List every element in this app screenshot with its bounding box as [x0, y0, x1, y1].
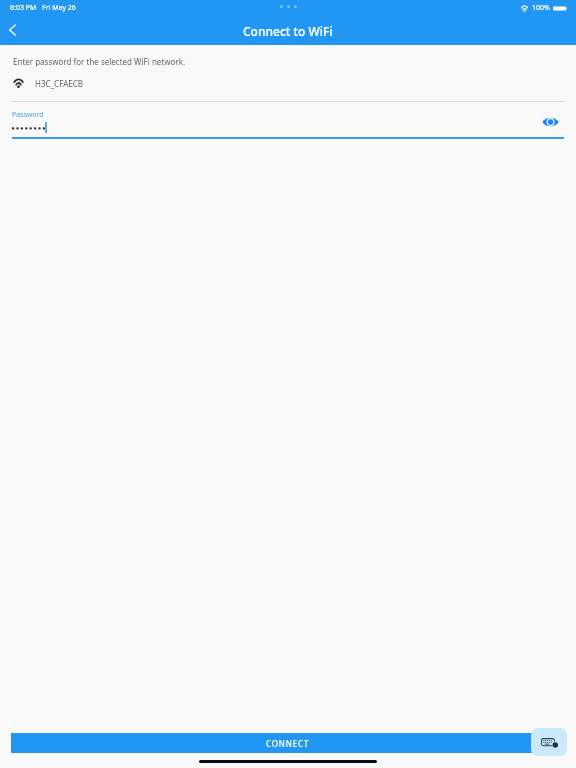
button[interactable]: CONNECT	[11, 733, 565, 753]
staticText: Fri May 26	[42, 3, 76, 13]
staticText: Password	[12, 110, 44, 120]
button[interactable]: Back	[2, 20, 22, 40]
button[interactable]: Show password	[538, 110, 562, 134]
staticText: CONNECT	[266, 738, 310, 749]
button[interactable]: Hide keyboard	[531, 728, 567, 756]
staticText: Enter password for the selected WiFi net…	[13, 56, 186, 67]
staticText: H3C_CFAECB	[35, 78, 83, 89]
staticText: Connect to WiFi	[243, 23, 333, 39]
staticText: 100%	[532, 3, 550, 13]
staticText: 6:03 PM	[10, 3, 37, 13]
